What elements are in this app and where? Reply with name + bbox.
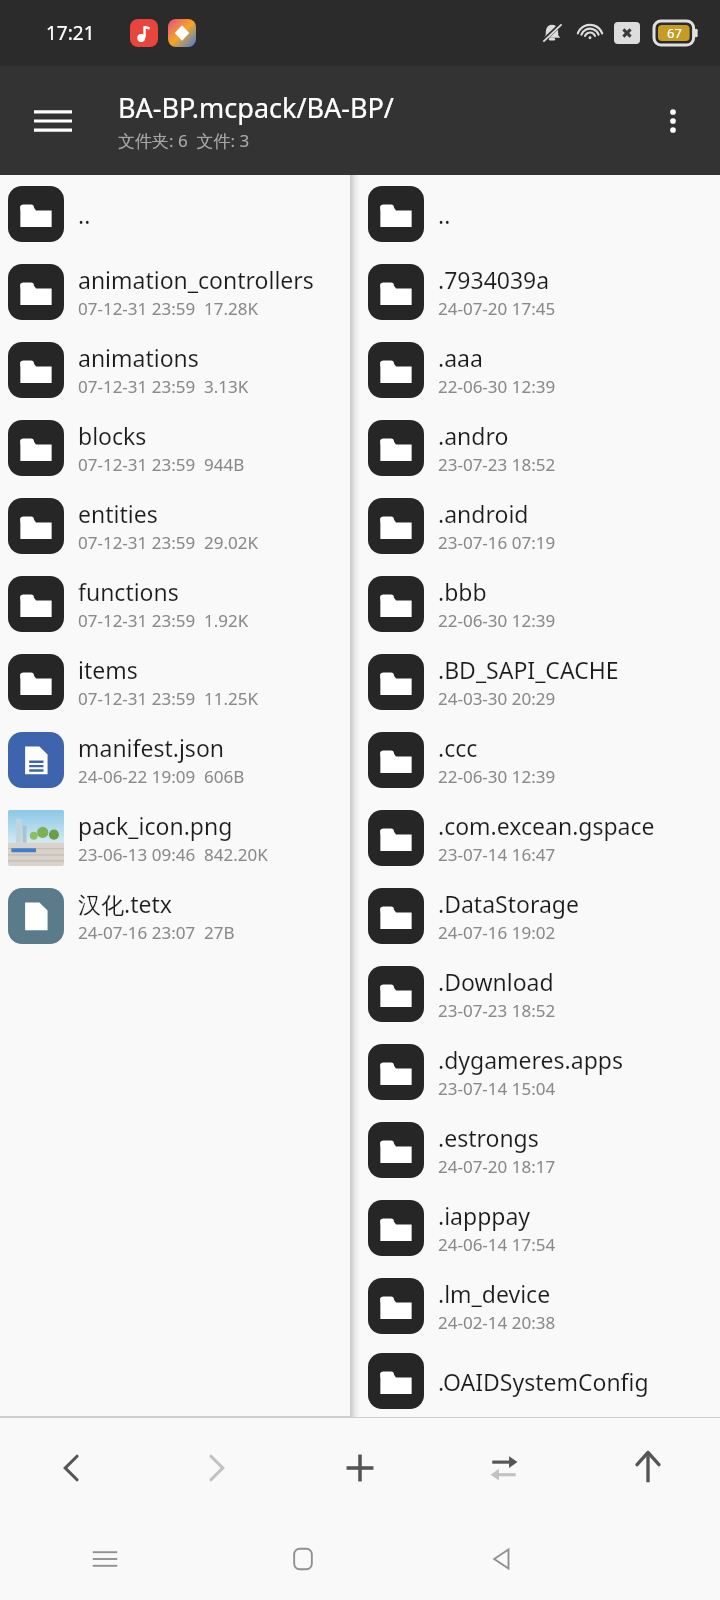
staticText: manifest.json [78, 732, 225, 763]
staticText: .. [78, 199, 91, 230]
button[interactable]: .dygameres.apps [360, 1033, 720, 1111]
staticText: 23-07-23 18:52 [438, 453, 556, 476]
staticText: 23-07-23 18:52 [438, 999, 556, 1022]
staticText: .estrongs [438, 1122, 539, 1153]
button[interactable]: .iapppay [360, 1189, 720, 1267]
button[interactable]: Home [271, 1527, 335, 1591]
staticText: 汉化.tetx [78, 888, 172, 919]
button[interactable]: entities [0, 487, 350, 565]
staticText: 24-07-16 19:02 [438, 921, 556, 944]
button[interactable]: .7934039a [360, 253, 720, 331]
staticText: 24-07-16 23:07 27B [78, 921, 235, 944]
staticText: animation_controllers [78, 264, 314, 295]
button[interactable]: Forward [144, 1418, 288, 1518]
button[interactable]: .android [360, 487, 720, 565]
staticText: pack_icon.png [78, 810, 233, 841]
button[interactable]: .. [360, 175, 720, 253]
button[interactable]: .com.excean.gspace [360, 799, 720, 877]
staticText: 07-12-31 23:59 29.02K [78, 531, 258, 554]
button[interactable]: Back [469, 1527, 533, 1591]
staticText: 22-06-30 12:39 [438, 609, 556, 632]
button[interactable]: animation_controllers [0, 253, 350, 331]
button[interactable]: animations [0, 331, 350, 409]
button[interactable]: .aaa [360, 331, 720, 409]
staticText: 24-07-20 18:17 [438, 1155, 556, 1178]
staticText: 文件夹: 6 文件: 3 [118, 129, 250, 152]
staticText: .andro [438, 420, 509, 451]
button[interactable]: .lm_device [360, 1267, 720, 1345]
button[interactable]: .OAIDSystemConfig [360, 1345, 720, 1417]
button[interactable]: pack_icon.png [0, 799, 350, 877]
staticText: .ccc [438, 732, 478, 763]
staticText: .DataStorage [438, 888, 579, 919]
staticText: 22-06-30 12:39 [438, 765, 556, 788]
staticText: 07-12-31 23:59 17.28K [78, 297, 258, 320]
button[interactable]: Swap panes [432, 1418, 576, 1518]
button[interactable]: New [288, 1418, 432, 1518]
staticText: .Download [438, 966, 554, 997]
button[interactable]: .andro [360, 409, 720, 487]
staticText: 22-06-30 12:39 [438, 375, 556, 398]
staticText: 24-06-22 19:09 606B [78, 765, 245, 788]
button[interactable]: Recent apps [73, 1527, 137, 1591]
staticText: 24-02-14 20:38 [438, 1311, 556, 1334]
staticText: 07-12-31 23:59 3.13K [78, 375, 249, 398]
button[interactable]: items [0, 643, 350, 721]
staticText: 07-12-31 23:59 11.25K [78, 687, 258, 710]
staticText: .dygameres.apps [438, 1044, 623, 1075]
button[interactable]: blocks [0, 409, 350, 487]
staticText: .lm_device [438, 1278, 551, 1309]
button[interactable]: Up [576, 1418, 720, 1518]
button[interactable]: .Download [360, 955, 720, 1033]
staticText: 23-07-16 07:19 [438, 531, 556, 554]
button[interactable]: functions [0, 565, 350, 643]
staticText: 24-07-20 17:45 [438, 297, 556, 320]
button[interactable]: manifest.json [0, 721, 350, 799]
staticText: 24-03-30 20:29 [438, 687, 556, 710]
staticText: 07-12-31 23:59 1.92K [78, 609, 249, 632]
staticText: functions [78, 576, 179, 607]
button[interactable]: More options [644, 92, 702, 150]
staticText: .. [438, 199, 451, 230]
button[interactable]: 汉化.tetx [0, 877, 350, 955]
staticText: 07-12-31 23:59 944B [78, 453, 245, 476]
staticText: .android [438, 498, 529, 529]
staticText: 67 [667, 24, 682, 42]
staticText: .7934039a [438, 264, 550, 295]
button[interactable]: Menu [22, 90, 84, 152]
staticText: 24-06-14 17:54 [438, 1233, 556, 1256]
button[interactable]: .. [0, 175, 350, 253]
staticText: animations [78, 342, 199, 373]
staticText: .aaa [438, 342, 483, 373]
staticText: blocks [78, 420, 147, 451]
staticText: 23-06-13 09:46 842.20K [78, 843, 268, 866]
staticText: entities [78, 498, 158, 529]
staticText: 17:21 [46, 20, 95, 46]
button[interactable]: .estrongs [360, 1111, 720, 1189]
button[interactable]: Back [0, 1418, 144, 1518]
button[interactable]: .ccc [360, 721, 720, 799]
staticText: .iapppay [438, 1200, 531, 1231]
button[interactable]: .BD_SAPI_CACHE [360, 643, 720, 721]
staticText: BA-BP.mcpack/BA-BP/ [118, 89, 394, 126]
staticText: .bbb [438, 576, 487, 607]
staticText: items [78, 654, 138, 685]
staticText: .OAIDSystemConfig [438, 1366, 649, 1397]
staticText: 23-07-14 16:47 [438, 843, 556, 866]
staticText: .com.excean.gspace [438, 810, 655, 841]
staticText: 23-07-14 15:04 [438, 1077, 556, 1100]
staticText: .BD_SAPI_CACHE [438, 654, 619, 685]
button[interactable]: .bbb [360, 565, 720, 643]
button[interactable]: .DataStorage [360, 877, 720, 955]
